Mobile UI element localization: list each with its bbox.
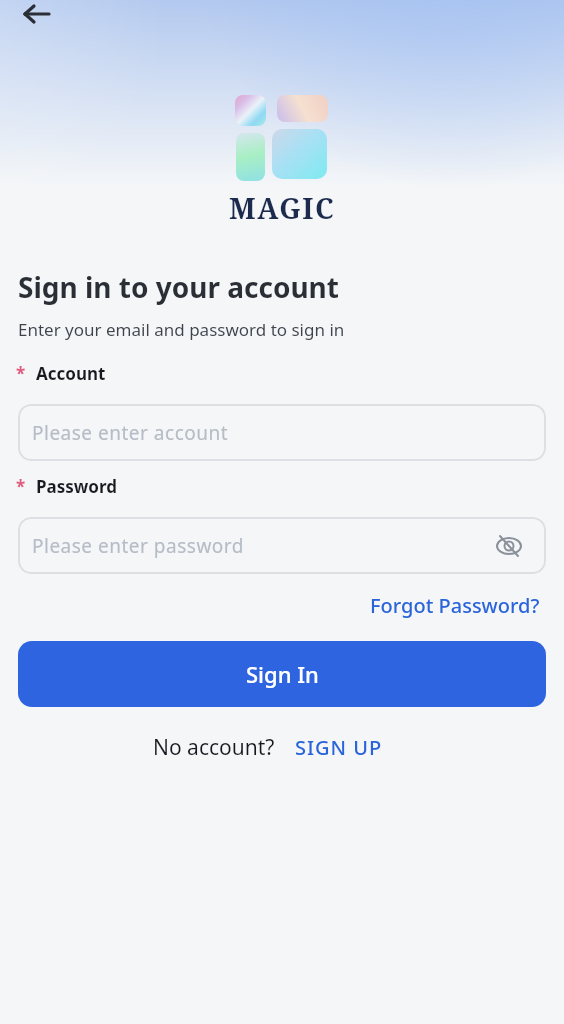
staticText: *: [16, 475, 26, 498]
staticText: MAGIC: [229, 189, 336, 227]
staticText: Account: [36, 362, 106, 385]
staticText: Enter your email and password to sign in: [18, 318, 345, 341]
staticText: Sign In: [246, 659, 319, 689]
staticText: Sign in to your account: [18, 268, 339, 306]
staticText: Please enter password: [32, 533, 244, 559]
button[interactable]: [18, 0, 56, 28]
button[interactable]: Sign In: [18, 641, 546, 707]
staticText: Forgot Password?: [370, 592, 540, 619]
button[interactable]: Please enter password: [18, 517, 546, 574]
staticText: *: [16, 362, 26, 385]
staticText: Password: [36, 475, 117, 498]
button[interactable]: Forgot Password?: [370, 592, 540, 619]
button[interactable]: Please enter account: [18, 404, 546, 461]
staticText: No account?: [153, 733, 275, 762]
staticText: Please enter account: [32, 420, 229, 446]
button[interactable]: [496, 535, 522, 557]
button[interactable]: SIGN UP: [295, 734, 383, 761]
staticText: SIGN UP: [295, 734, 383, 761]
